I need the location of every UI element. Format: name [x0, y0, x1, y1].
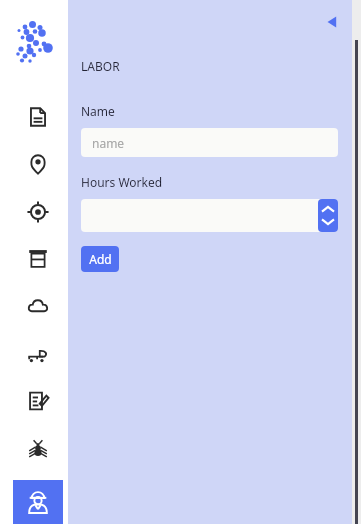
staticText: Add: [89, 251, 112, 267]
button[interactable]: Reports: [13, 379, 63, 423]
button[interactable]: Equipment: [13, 332, 63, 376]
button[interactable]: Weather: [13, 284, 63, 328]
button[interactable]: Pests: [13, 427, 63, 471]
button[interactable]: Target: [13, 190, 63, 234]
button[interactable]: Materials: [13, 237, 63, 281]
staticText: LABOR: [81, 58, 120, 74]
button[interactable]: Location: [13, 142, 63, 186]
staticText: name: [92, 135, 125, 151]
staticText: Hours Worked: [81, 174, 163, 190]
button[interactable]: Increment or decrement hours: [318, 199, 338, 232]
button[interactable]: name: [81, 128, 338, 157]
staticText: Name: [81, 103, 115, 119]
button[interactable]: Labor: [13, 480, 63, 524]
button[interactable]: Collapse panel: [318, 8, 346, 36]
button[interactable]: [81, 199, 338, 232]
button[interactable]: Documents: [13, 95, 63, 139]
button[interactable]: Add: [81, 246, 119, 272]
